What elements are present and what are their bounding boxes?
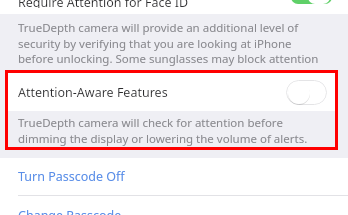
button[interactable]: Attention-Aware Features <box>5 73 338 111</box>
button[interactable]: Attention-Aware Features toggle <box>286 80 327 105</box>
button[interactable]: Change Passcode <box>0 196 348 215</box>
staticText: Require Attention for Face ID <box>18 0 189 8</box>
staticText: TrueDepth camera will check for attentio… <box>18 115 326 146</box>
button[interactable]: Require Attention for Face ID <box>0 0 348 14</box>
staticText: TrueDepth camera will provide an additio… <box>18 20 330 81</box>
staticText: Attention-Aware Features <box>18 84 168 101</box>
staticText: Change Passcode <box>18 207 122 215</box>
button[interactable]: Require Attention for Face ID toggle <box>291 0 332 4</box>
button[interactable]: Turn Passcode Off <box>0 158 348 195</box>
staticText: Turn Passcode Off <box>18 168 125 185</box>
